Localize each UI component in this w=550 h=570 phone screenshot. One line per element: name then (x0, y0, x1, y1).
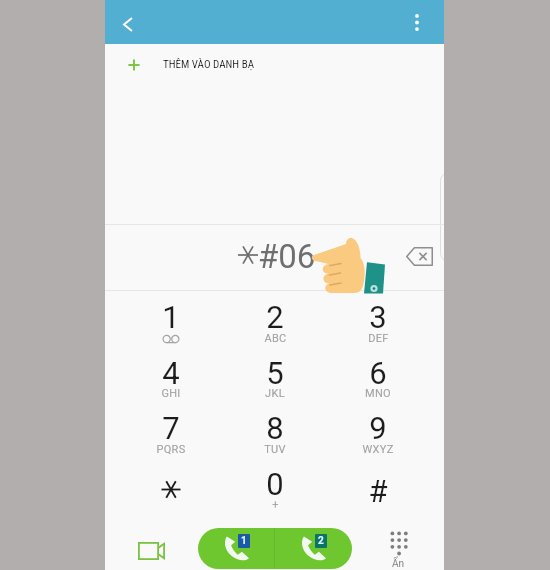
staticText: 2 (266, 299, 284, 335)
staticText: 0 (266, 466, 284, 502)
button[interactable] (330, 345, 426, 400)
button[interactable] (227, 290, 323, 345)
staticText: ABC (264, 332, 287, 345)
staticText: 1 (241, 535, 247, 547)
staticText: 6 (369, 355, 387, 391)
staticText: PQRS (156, 443, 186, 456)
staticText: # (368, 473, 388, 509)
button[interactable] (330, 401, 426, 456)
staticText: THÊM VÀO DANH BẠ (163, 58, 255, 71)
button[interactable] (330, 463, 426, 518)
staticText: GHI (161, 387, 181, 400)
staticText: 9 (369, 410, 387, 446)
staticText: WXYZ (362, 443, 394, 456)
button[interactable]: Video call (130, 531, 172, 570)
staticText: 4 (162, 355, 180, 391)
button[interactable]: Call with SIM 2 (275, 528, 352, 569)
staticText: 5 (266, 355, 284, 391)
button[interactable]: Call with SIM 1 (198, 528, 274, 569)
button[interactable] (123, 456, 219, 511)
button[interactable]: THÊM VÀO DANH BẠ (105, 44, 444, 85)
button[interactable] (123, 345, 219, 400)
staticText: + (272, 498, 279, 511)
staticText: 8 (266, 410, 284, 446)
staticText: DEF (368, 332, 389, 345)
staticText: 7 (162, 410, 180, 446)
button[interactable]: Back (106, 2, 150, 46)
button[interactable] (123, 401, 219, 456)
staticText: JKL (265, 387, 285, 400)
button[interactable] (123, 290, 219, 345)
button[interactable] (227, 345, 323, 400)
button[interactable]: Backspace (397, 234, 441, 278)
button[interactable] (227, 401, 323, 456)
staticText: TUV (264, 443, 286, 456)
button[interactable] (227, 456, 323, 511)
button[interactable]: More options (397, 2, 437, 42)
staticText: 1 (162, 299, 180, 335)
staticText: #06 (258, 237, 316, 276)
button[interactable]: Hide keypad (376, 531, 420, 570)
staticText: 2 (318, 535, 324, 547)
button[interactable] (330, 290, 426, 345)
staticText: Ẩn (392, 558, 405, 570)
staticText: MNO (365, 387, 391, 400)
staticText: 3 (369, 299, 387, 335)
